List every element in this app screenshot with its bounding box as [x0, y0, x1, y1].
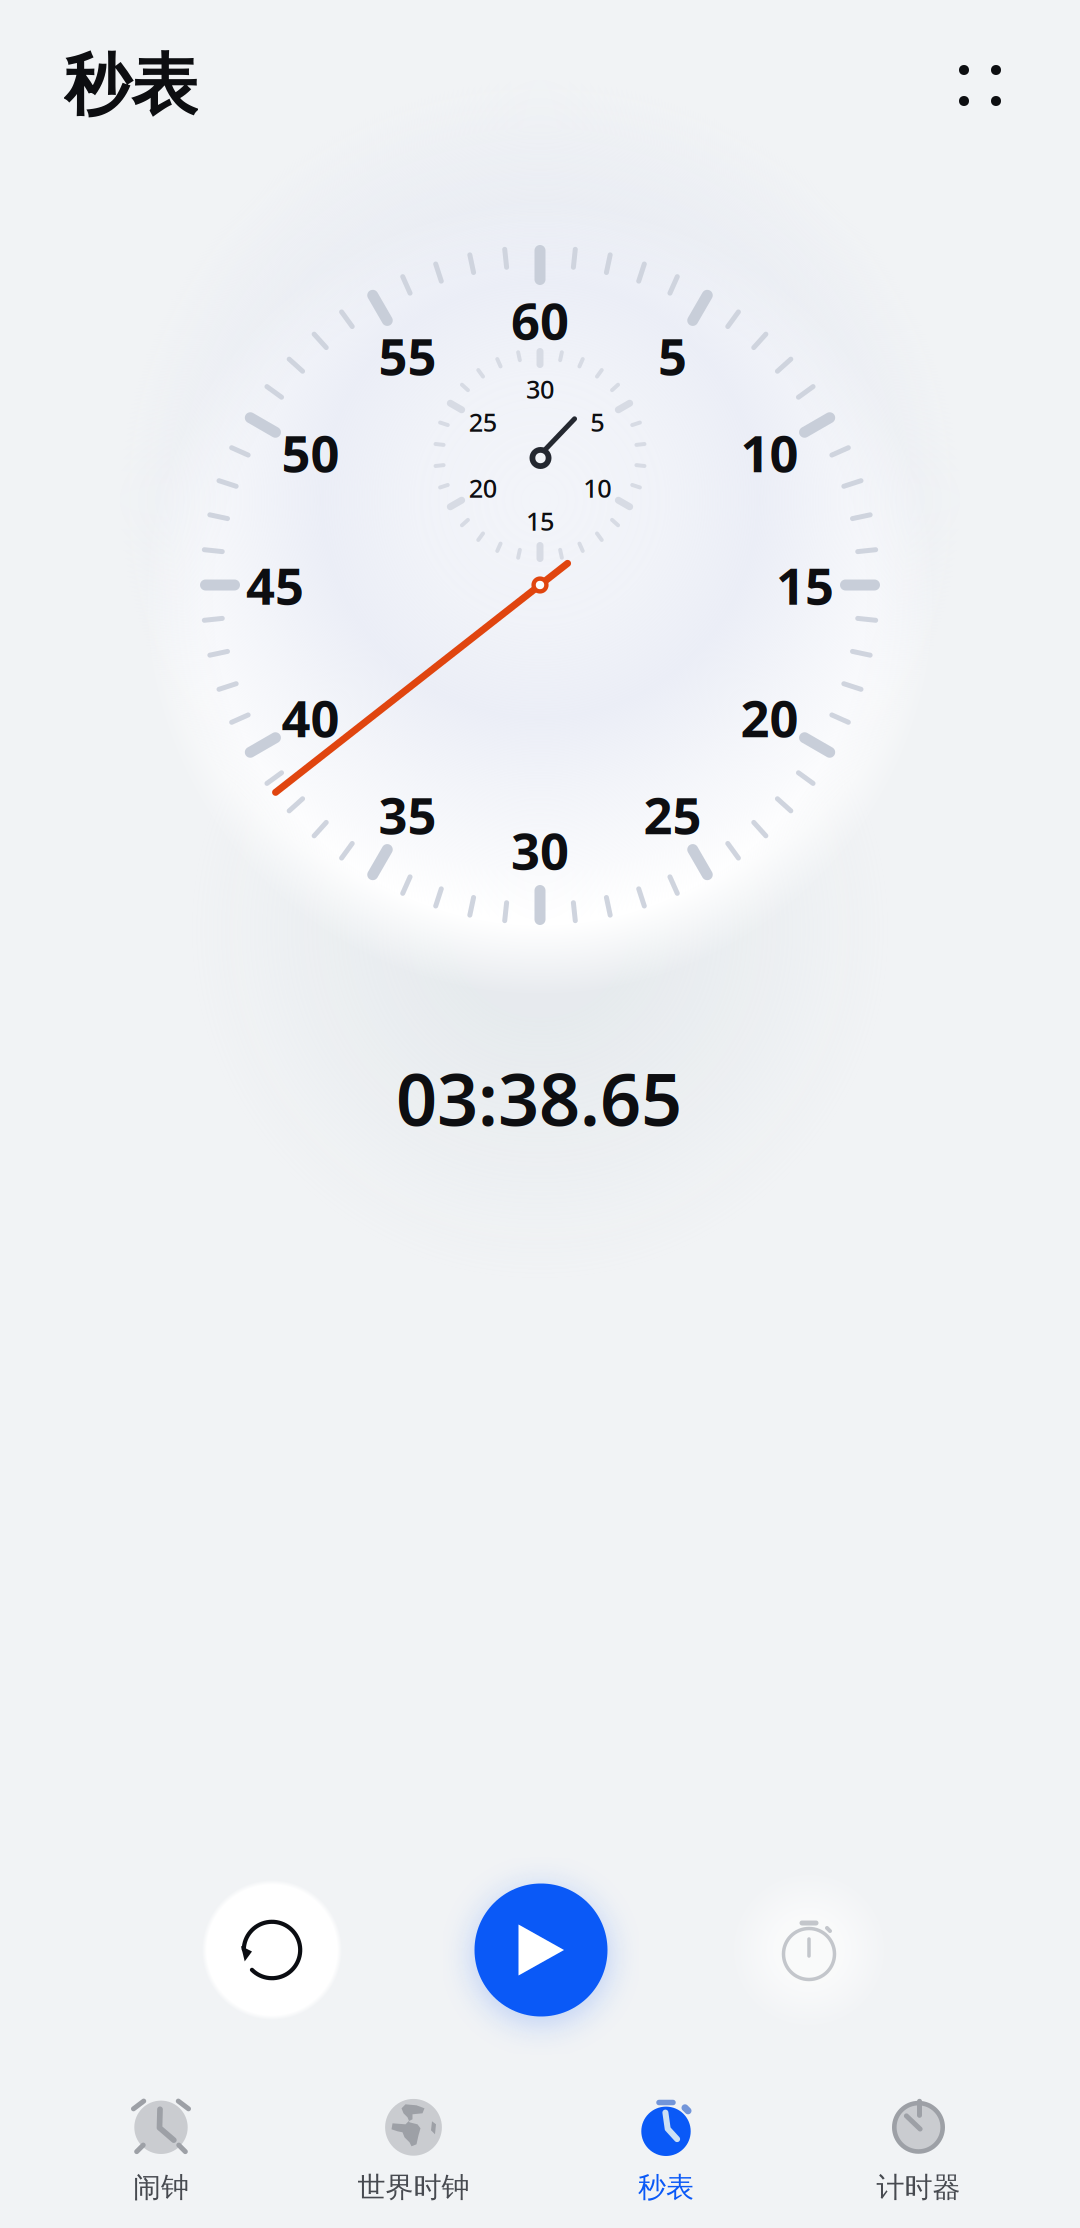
staticText: 25 — [469, 405, 497, 439]
button[interactable]: 秒表 — [541, 2087, 791, 2213]
staticText: 15 — [776, 551, 834, 619]
staticText: 30 — [526, 372, 554, 406]
staticText: 30 — [511, 816, 569, 884]
staticText: 计时器 — [876, 2170, 960, 2205]
staticText: 20 — [469, 471, 497, 505]
button[interactable]: Lap — [731, 1872, 887, 2028]
staticText: 20 — [740, 684, 798, 751]
staticText: 10 — [583, 471, 611, 505]
staticText: 10 — [740, 419, 798, 486]
staticText: 15 — [526, 504, 554, 538]
staticText: 35 — [378, 781, 436, 848]
button[interactable]: More options — [930, 45, 1030, 126]
button[interactable]: 计时器 — [793, 2087, 1043, 2213]
staticText: 40 — [281, 684, 339, 751]
button[interactable]: 闹钟 — [36, 2087, 286, 2213]
staticText: 5 — [590, 405, 604, 439]
button[interactable]: Start — [474, 1883, 607, 2016]
button[interactable]: Reset — [202, 1880, 342, 2020]
staticText: 世界时钟 — [357, 2170, 469, 2205]
staticText: 60 — [511, 286, 569, 354]
staticText: 秒表 — [638, 2170, 694, 2205]
staticText: 03:38.65 — [396, 1050, 682, 1146]
staticText: 25 — [643, 781, 701, 848]
staticText: 5 — [658, 322, 687, 389]
staticText: 闹钟 — [133, 2170, 189, 2205]
staticText: 50 — [281, 419, 339, 486]
staticText: 秒表 — [64, 45, 198, 126]
staticText: 45 — [246, 551, 304, 619]
staticText: 55 — [378, 322, 436, 389]
button[interactable]: 世界时钟 — [288, 2087, 538, 2213]
